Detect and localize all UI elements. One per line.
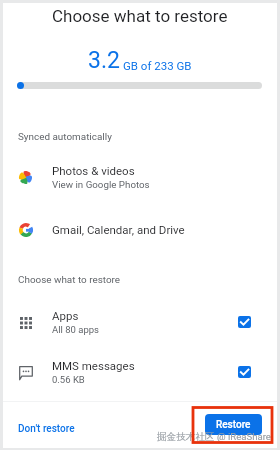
staticText: 掘金技术社区 @ iReaShare xyxy=(157,431,271,443)
button[interactable]: Don't restore xyxy=(15,421,78,437)
other: Google Photos xyxy=(18,170,33,185)
staticText: Synced automatically xyxy=(18,131,112,143)
button[interactable]: Messages xyxy=(3,357,277,387)
staticText: All 80 apps xyxy=(52,324,99,335)
button[interactable]: Toggle Apps xyxy=(238,316,251,328)
button[interactable]: Restore xyxy=(205,414,262,435)
staticText: MMS messages xyxy=(52,359,135,372)
staticText: Don't restore xyxy=(18,423,75,435)
staticText: View in Google Photos xyxy=(52,179,150,190)
button[interactable]: Google xyxy=(3,214,277,244)
staticText: Gmail, Calendar, and Drive xyxy=(52,223,185,236)
staticText: GB of 233 GB xyxy=(123,59,192,72)
staticText: Restore xyxy=(216,419,251,431)
other: Messages xyxy=(18,365,33,380)
other: Google xyxy=(18,222,33,237)
staticText: Choose what to restore xyxy=(52,6,228,26)
staticText: Choose what to restore xyxy=(18,274,121,286)
staticText: 3.2 xyxy=(88,47,120,74)
button[interactable]: Apps xyxy=(3,307,277,337)
other: Apps xyxy=(18,315,33,330)
staticText: Apps xyxy=(52,309,79,322)
staticText: 0.56 KB xyxy=(52,374,85,385)
button[interactable]: Google Photos xyxy=(3,162,277,192)
button[interactable]: Toggle MMS messages xyxy=(238,366,251,378)
staticText: Photos & videos xyxy=(52,164,135,177)
